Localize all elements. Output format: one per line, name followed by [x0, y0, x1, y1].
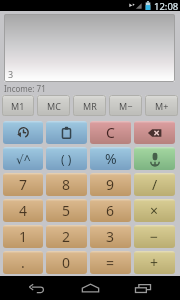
button[interactable]: 5 [46, 199, 87, 222]
button[interactable]: 4 [3, 199, 43, 222]
button[interactable]: % [90, 147, 131, 170]
staticText: % [105, 149, 117, 168]
button[interactable]: M− [109, 95, 142, 116]
button[interactable]: / [134, 173, 175, 196]
staticText: Income: 71 [4, 83, 46, 94]
staticText: 9 [106, 175, 115, 194]
staticText: M1 [11, 100, 25, 112]
button[interactable]: 1 [3, 225, 43, 248]
staticText: 8 [62, 175, 71, 194]
button[interactable]: Voice input [134, 147, 175, 170]
staticText: C [106, 123, 115, 142]
button[interactable]: 3 [90, 225, 131, 248]
staticText: M− [119, 100, 133, 112]
staticText: MC [47, 100, 61, 112]
staticText: 12:08 [154, 0, 179, 11]
button[interactable]: Home [72, 276, 108, 300]
button[interactable]: = [90, 251, 131, 274]
button[interactable]: 0 [46, 251, 87, 274]
staticText: 3 [8, 68, 14, 80]
button[interactable]: 7 [3, 173, 43, 196]
button[interactable]: History [3, 121, 43, 144]
button[interactable]: C [90, 121, 131, 144]
button[interactable]: . [3, 251, 43, 274]
staticText: 1 [19, 227, 28, 246]
staticText: 2 [62, 227, 71, 246]
staticText: 3 [106, 227, 115, 246]
staticText: M+ [155, 100, 169, 112]
button[interactable]: M+ [145, 95, 178, 116]
button[interactable]: M1 [2, 95, 34, 116]
button[interactable]: 6 [90, 199, 131, 222]
staticText: 7 [19, 175, 28, 194]
button[interactable]: √^ [3, 147, 43, 170]
staticText: / [152, 175, 158, 194]
staticText: 4 [19, 201, 28, 220]
staticText: √^ [16, 151, 31, 167]
staticText: + [150, 253, 159, 272]
staticText: × [150, 201, 159, 220]
button[interactable]: 8 [46, 173, 87, 196]
staticText: 5 [62, 201, 71, 220]
staticText: . [21, 253, 25, 272]
button[interactable]: MR [73, 95, 106, 116]
staticText: 6 [106, 201, 115, 220]
button[interactable]: + [134, 251, 175, 274]
staticText: MR [83, 100, 97, 112]
button[interactable]: × [134, 199, 175, 222]
button[interactable]: Backspace [134, 121, 175, 144]
button[interactable]: Clipboard [46, 121, 87, 144]
button[interactable]: 9 [90, 173, 131, 196]
button[interactable]: 2 [46, 225, 87, 248]
button[interactable]: ( ) [46, 147, 87, 170]
button[interactable]: − [134, 225, 175, 248]
staticText: ( ) [61, 151, 72, 167]
button[interactable]: Back [18, 276, 54, 300]
staticText: 0 [62, 253, 71, 272]
button[interactable]: Recents [125, 276, 161, 300]
staticText: − [150, 227, 159, 246]
staticText: = [106, 253, 115, 272]
button[interactable]: MC [37, 95, 70, 116]
